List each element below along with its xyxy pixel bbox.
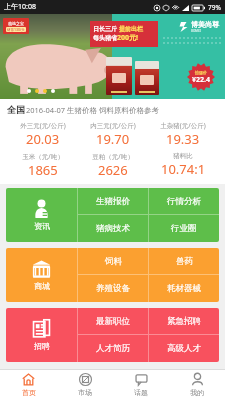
button[interactable]: 兽药 xyxy=(149,248,219,274)
staticText: 市场 xyxy=(78,388,92,397)
staticText: 79% xyxy=(208,3,221,12)
staticText: 10.74:1 xyxy=(161,160,206,178)
button[interactable]: 最新职位 xyxy=(78,308,148,334)
staticText: 20.03 xyxy=(26,130,60,148)
button[interactable]: 话题 xyxy=(113,370,169,400)
staticText: 全国 xyxy=(7,104,25,115)
staticText: ¥22.4 xyxy=(192,75,210,85)
staticText: 上午10:08 xyxy=(4,2,36,12)
staticText: 1865 xyxy=(28,161,58,179)
staticText: 每头猪省 xyxy=(93,34,117,42)
staticText: 豆粕（元/吨） xyxy=(92,152,134,161)
button[interactable]: 招聘 xyxy=(6,308,77,362)
staticText: 行业圈 xyxy=(171,223,197,234)
button[interactable]: 饲料 xyxy=(78,248,148,274)
staticText: BOMEI xyxy=(191,29,201,33)
staticText: 猪苗130/头 xyxy=(7,27,25,32)
staticText: 养殖设备 xyxy=(96,283,130,294)
staticText: 猪病技术 xyxy=(96,223,130,234)
staticText: 最新职位 xyxy=(96,316,130,327)
button[interactable]: 我的 xyxy=(169,370,225,400)
staticText: 资讯 xyxy=(34,221,50,231)
button[interactable]: 高级人才 xyxy=(149,335,219,362)
staticText: 行情分析 xyxy=(167,196,201,207)
button[interactable]: 生猪报价 xyxy=(78,188,148,214)
staticText: 猪料比 xyxy=(173,152,193,160)
staticText: 兽药 xyxy=(176,256,193,267)
staticText: 提前出栏 xyxy=(119,25,143,33)
button[interactable]: 资讯 xyxy=(6,188,77,242)
staticText: 日长三斤 xyxy=(93,25,117,33)
staticText: 内三元(元/公斤) xyxy=(90,121,136,130)
staticText: 土杂猪(元/公斤) xyxy=(160,121,206,130)
staticText: 博美尚尊 xyxy=(191,20,219,29)
staticText: 紧急招聘 xyxy=(167,316,201,327)
button[interactable]: 行情分析 xyxy=(149,188,219,214)
staticText: 2016-04-07 生猪价格 饲料原料价格参考 xyxy=(26,105,160,115)
button[interactable]: 耗材器械 xyxy=(149,275,219,302)
button[interactable]: 行业圈 xyxy=(149,215,219,242)
staticText: 耗材器械 xyxy=(167,283,201,294)
button[interactable]: 紧急招聘 xyxy=(149,308,219,334)
staticText: 200元! xyxy=(117,33,138,43)
staticText: 人才简历 xyxy=(96,343,130,354)
button[interactable]: 养殖设备 xyxy=(78,275,148,302)
button[interactable]: 精选之宝 xyxy=(0,14,225,99)
staticText: 商城 xyxy=(34,281,50,291)
staticText: 19.33 xyxy=(166,130,200,148)
staticText: 2626 xyxy=(98,161,128,179)
button[interactable]: 人才简历 xyxy=(78,335,148,362)
button[interactable]: 猪病技术 xyxy=(78,215,148,242)
staticText: 外三元(元/公斤) xyxy=(20,121,66,130)
staticText: 生猪报价 xyxy=(96,196,130,207)
staticText: 话题 xyxy=(134,388,148,397)
staticText: 惊爆价 xyxy=(195,70,207,75)
button[interactable]: 市场 xyxy=(57,370,113,400)
staticText: 高级人才 xyxy=(167,343,201,354)
staticText: 精选之宝 xyxy=(8,21,24,26)
staticText: 饲料 xyxy=(105,256,122,267)
staticText: 首页 xyxy=(22,388,36,397)
button[interactable]: 商城 xyxy=(6,248,77,302)
staticText: 19.70 xyxy=(96,130,130,148)
button[interactable]: 首页 xyxy=(0,370,57,400)
staticText: 玉米（元/吨） xyxy=(22,152,64,161)
staticText: 我的 xyxy=(190,388,204,397)
staticText: 招聘 xyxy=(34,341,50,351)
